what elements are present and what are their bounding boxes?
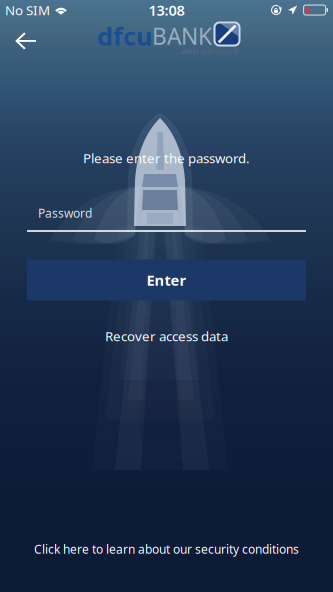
staticText: No SIM (5, 1, 50, 19)
button[interactable]: Enter (27, 259, 306, 300)
staticText: dfcu (97, 19, 152, 53)
button[interactable]: Click here to learn about our security c… (0, 537, 333, 561)
staticText: ...with pleasure (172, 45, 238, 57)
button[interactable]: Recover access data (27, 320, 306, 352)
button[interactable]: Back (1, 20, 51, 62)
staticText: Please enter the password. (83, 149, 250, 167)
staticText: Enter (146, 270, 186, 290)
staticText: BANK (152, 21, 212, 51)
staticText: Password (38, 205, 92, 221)
staticText: Recover access data (105, 327, 228, 345)
staticText: Click here to learn about our security c… (34, 541, 299, 557)
staticText: 13:08 (148, 0, 184, 20)
